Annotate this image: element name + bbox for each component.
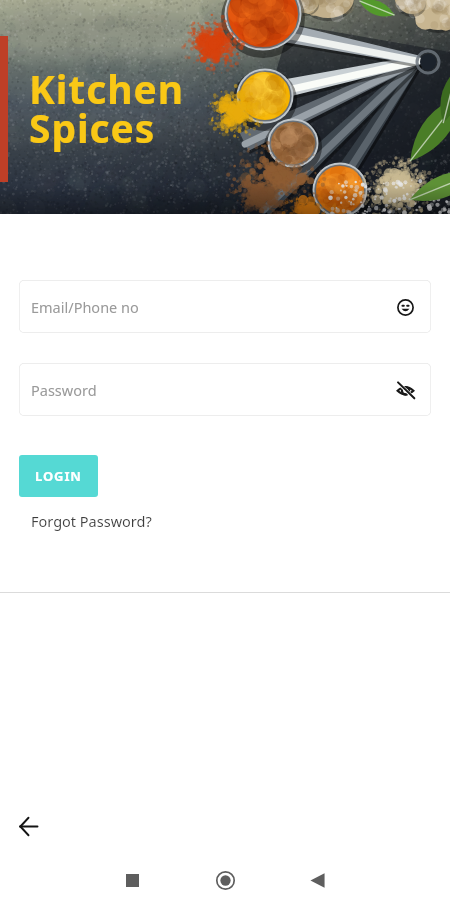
staticText: Password	[31, 380, 394, 400]
staticText: Kitchen Spices	[29, 62, 184, 155]
button[interactable]: LOGIN	[19, 455, 98, 497]
other: Show password	[394, 379, 416, 401]
button[interactable]: Forgot Password?	[31, 511, 152, 531]
other: Emoji	[394, 296, 416, 318]
staticText: Email/Phone no	[31, 297, 394, 317]
button[interactable]: Back	[297, 861, 337, 900]
button[interactable]: Password	[19, 363, 431, 416]
staticText: LOGIN	[35, 467, 82, 485]
button[interactable]: Recent apps	[112, 861, 152, 900]
button[interactable]: Email/Phone no	[19, 280, 431, 333]
button[interactable]: Back	[14, 812, 42, 840]
button[interactable]: Home	[205, 861, 245, 900]
staticText: Forgot Password?	[31, 511, 152, 531]
